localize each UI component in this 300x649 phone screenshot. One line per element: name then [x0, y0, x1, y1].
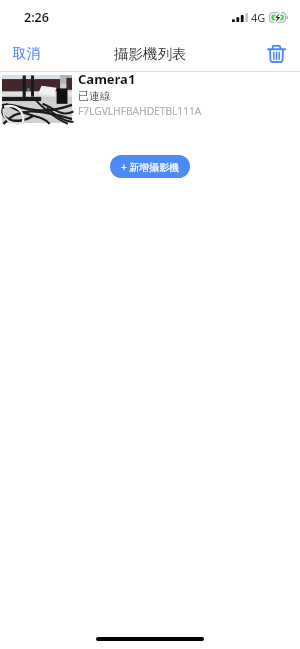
staticText: 已連線: [78, 89, 111, 103]
staticText: 2:26: [24, 9, 49, 26]
staticText: F7LGVLHFBAHDETBL111A: [78, 104, 202, 118]
staticText: 攝影機列表: [114, 45, 187, 63]
button[interactable]: + 新增攝影機: [110, 155, 190, 178]
staticText: Camera1: [78, 70, 136, 88]
button[interactable]: Delete: [255, 38, 300, 70]
button[interactable]: Camera1: [0, 72, 300, 124]
staticText: 4G: [251, 10, 266, 25]
button[interactable]: 取消: [0, 39, 53, 68]
staticText: + 新增攝影機: [121, 160, 180, 174]
staticText: 取消: [13, 45, 40, 62]
